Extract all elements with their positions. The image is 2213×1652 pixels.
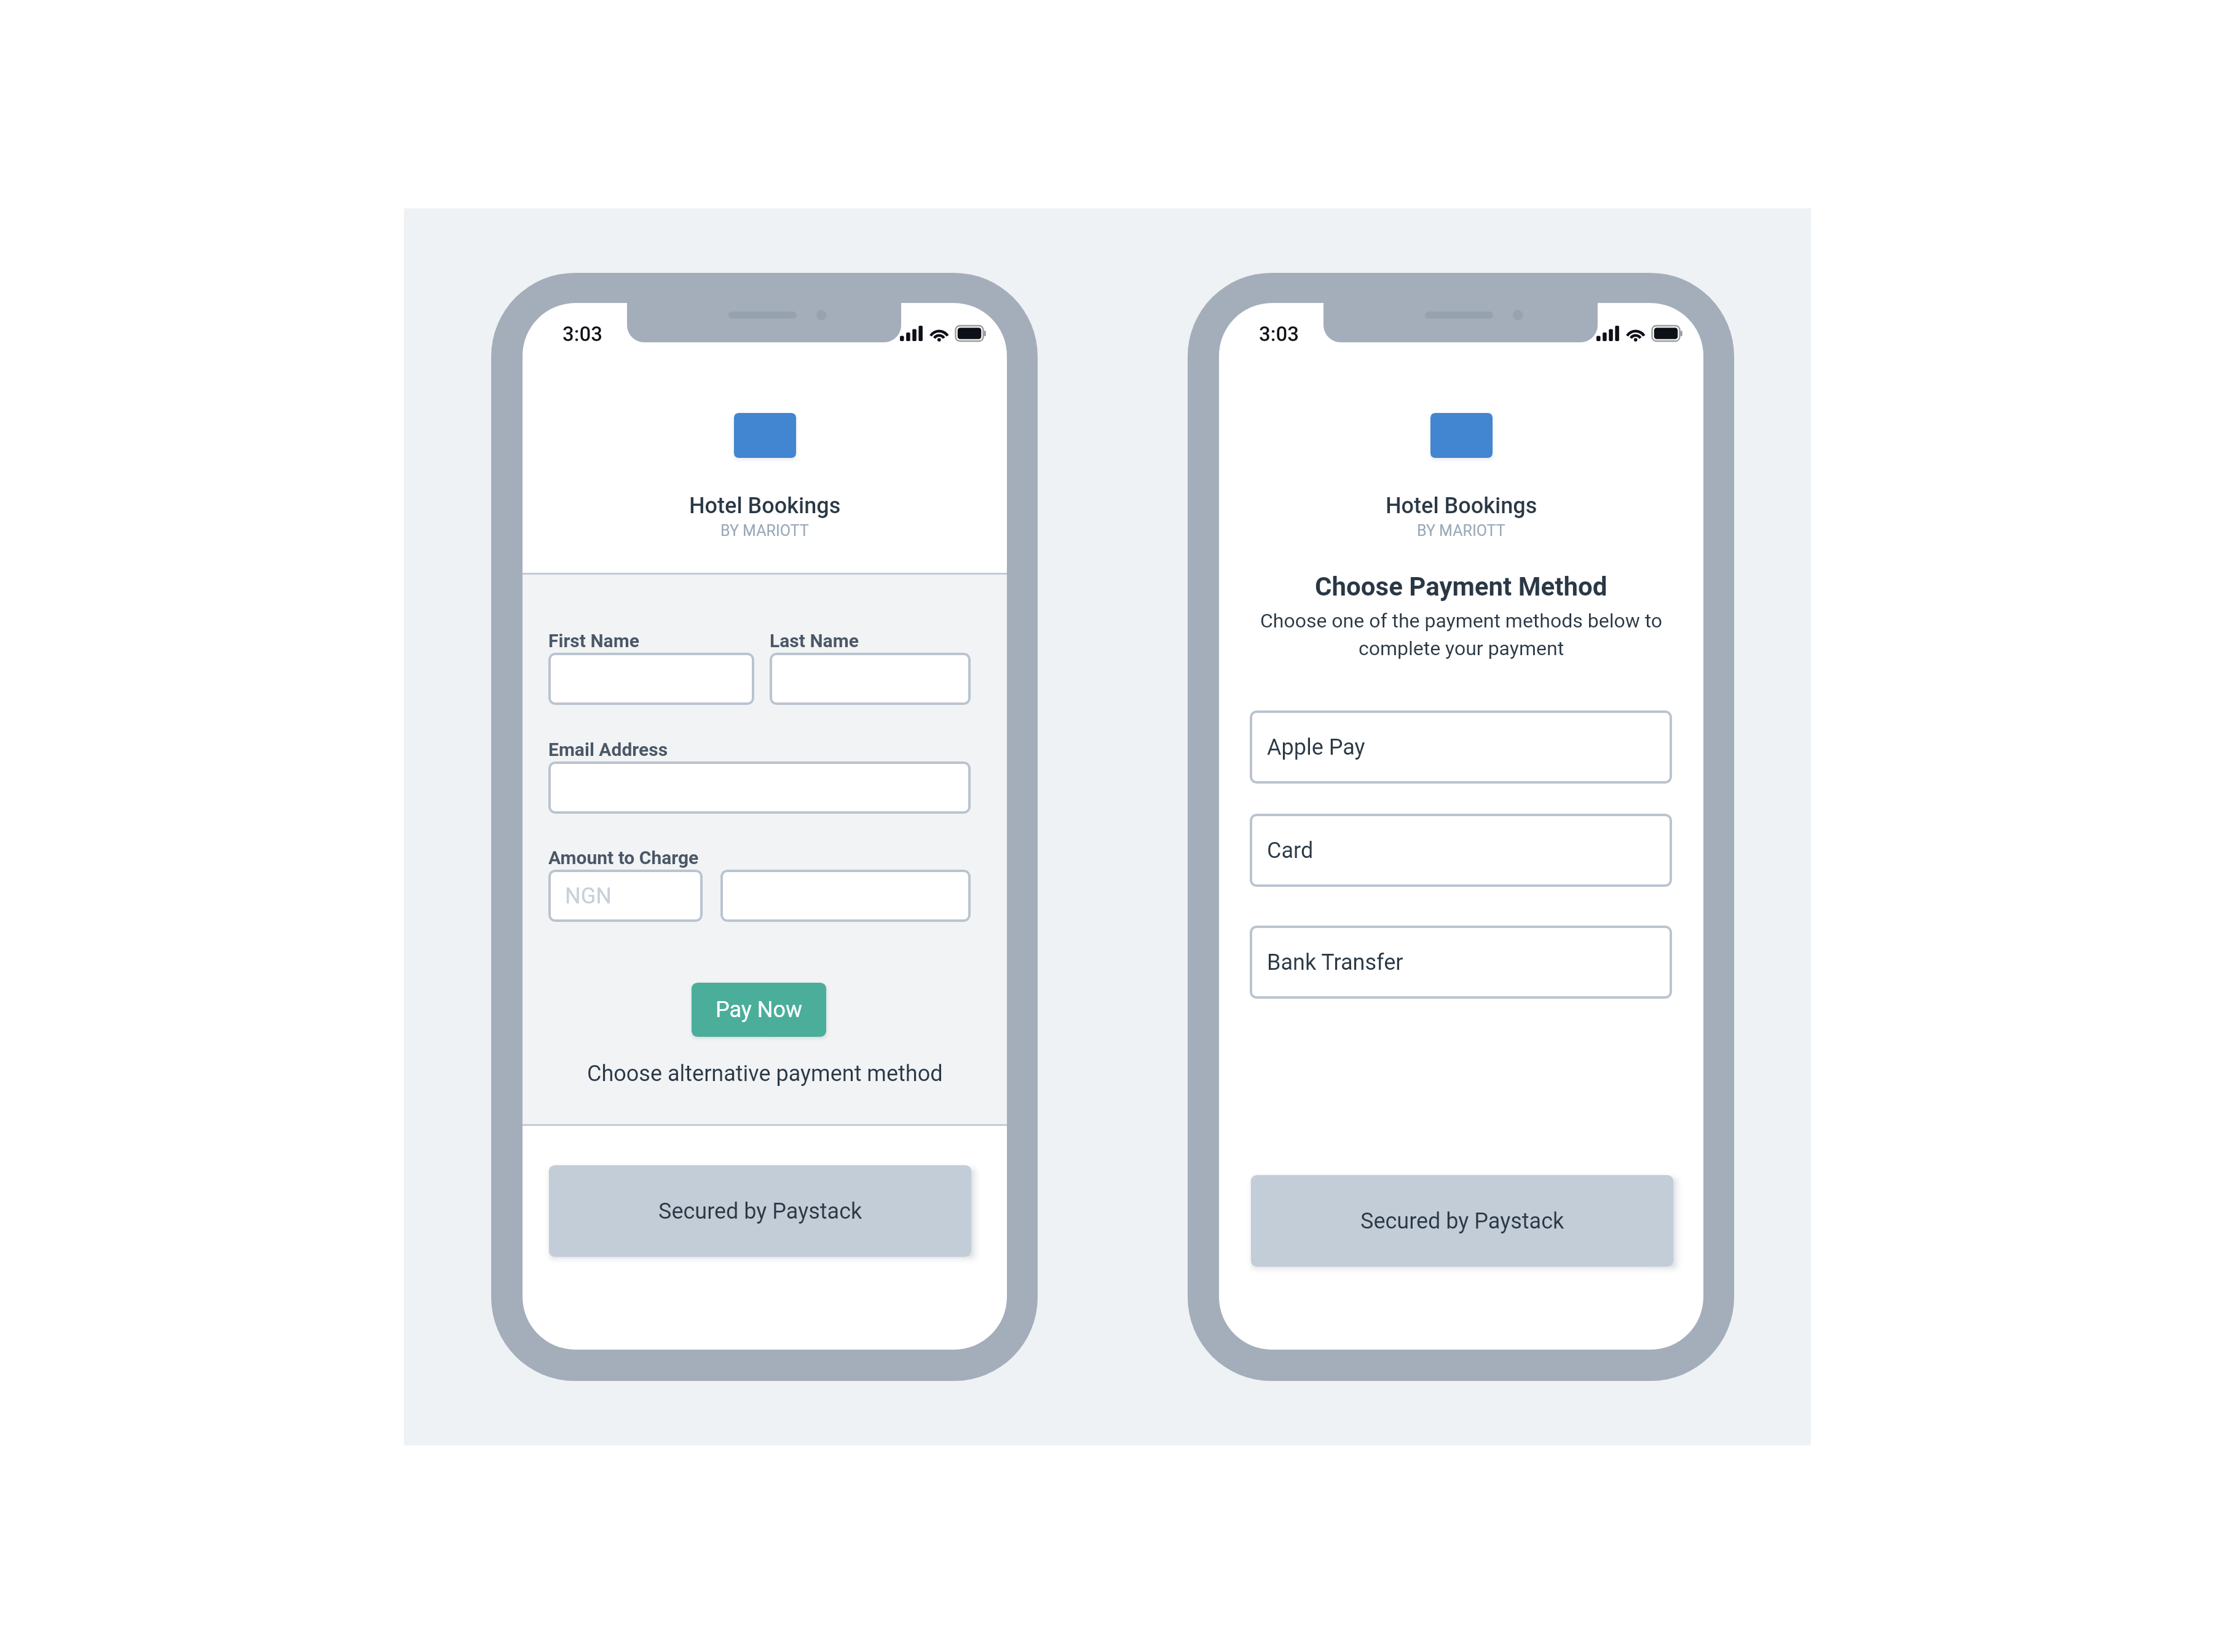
- staticText: Hotel Bookings: [1386, 493, 1537, 519]
- button[interactable]: Last name: [770, 653, 971, 705]
- button[interactable]: Secured by Paystack: [1251, 1175, 1673, 1267]
- staticText: BY MARIOTT: [1417, 522, 1505, 540]
- button[interactable]: Amount: [720, 870, 971, 922]
- button[interactable]: Pay Now: [692, 983, 826, 1037]
- staticText: 3:03: [562, 322, 603, 346]
- staticText: Pay Now: [716, 997, 803, 1023]
- button[interactable]: Choose alternative payment method: [587, 1061, 943, 1087]
- staticText: Last Name: [770, 630, 859, 651]
- button[interactable]: Email address: [548, 761, 971, 814]
- staticText: Choose Payment Method: [1315, 572, 1607, 602]
- staticText: 3:03: [1259, 322, 1300, 346]
- other: Signal, Wi-Fi and battery status: [1596, 326, 1682, 341]
- staticText: Amount to Charge: [548, 847, 699, 868]
- button[interactable]: Apple Pay: [1250, 710, 1672, 784]
- button[interactable]: Currency: [548, 870, 703, 922]
- button[interactable]: First name: [548, 653, 754, 705]
- button[interactable]: Bank Transfer: [1250, 926, 1672, 999]
- staticText: Secured by Paystack: [1360, 1208, 1564, 1234]
- staticText: Choose one of the payment methods below …: [1219, 609, 1703, 660]
- staticText: BY MARIOTT: [720, 522, 809, 540]
- staticText: Hotel Bookings: [689, 493, 841, 519]
- staticText: NGN: [565, 883, 612, 909]
- staticText: Card: [1267, 838, 1314, 863]
- staticText: Bank Transfer: [1267, 950, 1403, 975]
- staticText: Email Address: [548, 739, 668, 760]
- button[interactable]: Card: [1250, 814, 1672, 887]
- other: Signal, Wi-Fi and battery status: [900, 326, 986, 341]
- staticText: Secured by Paystack: [658, 1198, 862, 1224]
- staticText: Apple Pay: [1267, 734, 1365, 760]
- button[interactable]: Secured by Paystack: [549, 1165, 971, 1257]
- staticText: First Name: [548, 630, 639, 651]
